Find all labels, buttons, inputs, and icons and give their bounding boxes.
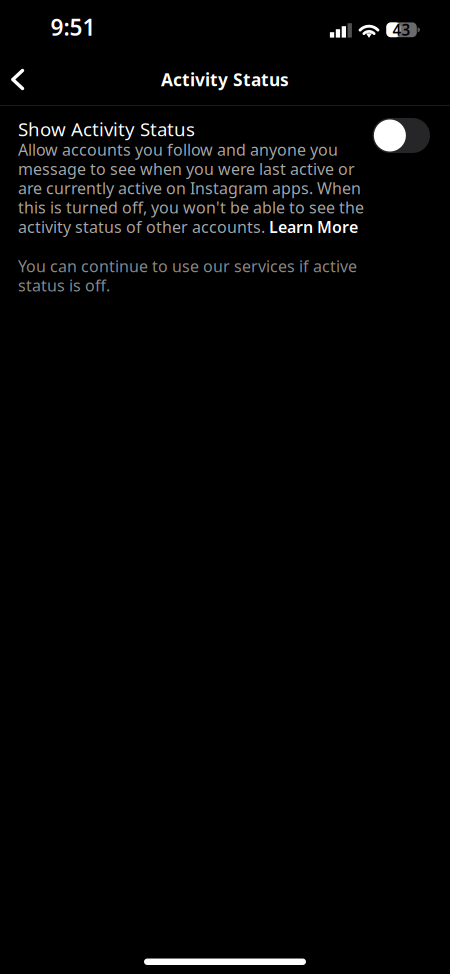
button[interactable]: Back [0, 57, 38, 102]
staticText: 9:51 [50, 12, 95, 42]
staticText: Allow accounts you follow and anyone you… [18, 140, 364, 236]
staticText: Activity Status [161, 68, 289, 91]
staticText: You can continue to use our services if … [18, 256, 357, 295]
button[interactable]: Show Activity Status [372, 118, 430, 153]
staticText: Show Activity Status [18, 117, 195, 140]
staticText: 43 [393, 19, 411, 40]
